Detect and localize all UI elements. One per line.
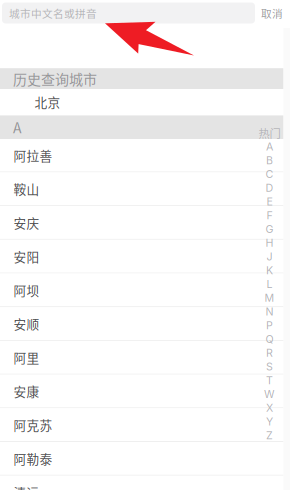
button[interactable]: C: [259, 167, 280, 181]
button[interactable]: K: [259, 263, 280, 277]
staticText: W: [264, 388, 275, 400]
button[interactable]: R: [259, 346, 280, 360]
button[interactable]: Z: [259, 428, 280, 442]
staticText: 取消: [261, 5, 283, 21]
staticText: 阿坝: [13, 281, 39, 299]
button[interactable]: L: [259, 277, 280, 291]
button[interactable]: G: [259, 222, 280, 236]
button[interactable]: E: [259, 195, 280, 208]
staticText: K: [266, 264, 273, 277]
button[interactable]: 鞍山: [0, 172, 283, 206]
button[interactable]: A: [259, 140, 280, 153]
staticText: E: [266, 195, 272, 208]
button[interactable]: 安阳: [0, 240, 283, 273]
button[interactable]: 安顺: [0, 307, 283, 341]
staticText: L: [266, 278, 272, 291]
button[interactable]: H: [259, 236, 280, 250]
staticText: 鞍山: [13, 180, 39, 198]
button[interactable]: 北京: [0, 89, 283, 115]
staticText: F: [266, 209, 272, 222]
staticText: M: [264, 291, 274, 304]
staticText: T: [266, 374, 273, 387]
staticText: D: [265, 181, 273, 194]
staticText: 城市中文名或拼音: [9, 5, 97, 21]
staticText: 安阳: [13, 247, 39, 265]
staticText: 安庆: [13, 213, 39, 232]
staticText: 热门: [258, 125, 280, 141]
button[interactable]: 安康: [0, 375, 283, 408]
button[interactable]: S: [259, 360, 280, 373]
button[interactable]: N: [259, 305, 280, 318]
staticText: Z: [266, 429, 273, 442]
button[interactable]: 安庆: [0, 206, 283, 240]
button[interactable]: 取消: [257, 2, 287, 23]
staticText: 北京: [34, 93, 60, 111]
button[interactable]: F: [259, 208, 280, 222]
button[interactable]: P: [259, 318, 280, 332]
button[interactable]: X: [259, 401, 280, 415]
button[interactable]: W: [259, 387, 280, 401]
staticText: A: [13, 117, 22, 137]
staticText: 阿拉善: [13, 146, 52, 164]
staticText: 阿勒泰: [13, 449, 52, 467]
button[interactable]: 阿拉善: [0, 139, 283, 172]
button[interactable]: T: [259, 373, 280, 387]
button[interactable]: 清远: [0, 476, 283, 490]
button[interactable]: M: [259, 291, 280, 305]
button[interactable]: 热门: [259, 126, 280, 140]
staticText: 历史查询城市: [13, 68, 97, 89]
staticText: Y: [266, 415, 273, 428]
staticText: 清远: [13, 483, 39, 490]
staticText: H: [265, 236, 273, 249]
staticText: 安顺: [13, 314, 39, 333]
button[interactable]: J: [259, 250, 280, 263]
staticText: N: [265, 305, 273, 318]
staticText: S: [266, 360, 273, 373]
staticText: R: [266, 346, 273, 359]
button[interactable]: 阿克苏: [0, 408, 283, 442]
button[interactable]: D: [259, 181, 280, 195]
button[interactable]: Q: [259, 332, 280, 346]
staticText: 阿里: [13, 348, 39, 366]
staticText: A: [266, 140, 273, 153]
button[interactable]: 阿里: [0, 341, 283, 375]
staticText: P: [266, 319, 273, 332]
staticText: G: [265, 223, 273, 236]
staticText: Q: [265, 333, 273, 345]
staticText: B: [266, 154, 273, 167]
button[interactable]: 阿勒泰: [0, 442, 283, 476]
button[interactable]: 阿坝: [0, 273, 283, 307]
button[interactable]: B: [259, 154, 280, 167]
staticText: X: [266, 401, 273, 414]
button[interactable]: Y: [259, 415, 280, 428]
button[interactable]: 城市中文名或拼音: [2, 2, 255, 23]
staticText: J: [266, 250, 272, 263]
staticText: C: [265, 168, 273, 181]
staticText: 安康: [13, 382, 39, 400]
staticText: 阿克苏: [13, 415, 52, 434]
